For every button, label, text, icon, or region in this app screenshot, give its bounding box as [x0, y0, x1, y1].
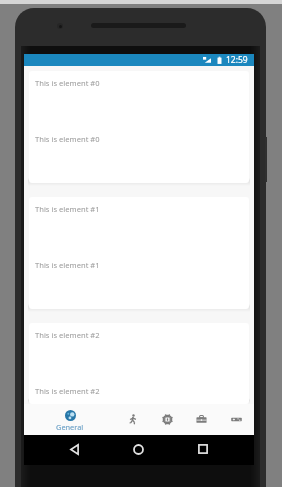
button[interactable]: Settings: [150, 404, 184, 435]
button[interactable]: Back: [59, 434, 89, 464]
button[interactable]: This is element #2: [29, 323, 249, 404]
staticText: This is element #1: [35, 260, 100, 270]
staticText: This is element #0: [35, 134, 100, 144]
staticText: 12:59: [226, 54, 248, 66]
button[interactable]: Recents: [188, 434, 218, 464]
staticText: This is element #1: [35, 204, 100, 214]
button[interactable]: Home: [123, 434, 153, 464]
staticText: This is element #0: [35, 78, 100, 88]
staticText: This is element #2: [35, 386, 100, 396]
button[interactable]: Activity: [116, 404, 150, 435]
button[interactable]: This is element #1: [29, 197, 249, 309]
button[interactable]: General: [24, 404, 116, 435]
button[interactable]: This is element #0: [29, 71, 249, 183]
staticText: This is element #2: [35, 330, 100, 340]
staticText: General: [56, 422, 84, 432]
button[interactable]: Work: [184, 404, 219, 435]
button[interactable]: Games: [219, 404, 254, 435]
